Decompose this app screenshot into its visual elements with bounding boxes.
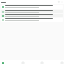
button[interactable]: Profile <box>60 61 63 64</box>
button[interactable]: Library <box>40 61 43 64</box>
button[interactable]: Explore <box>21 61 24 64</box>
button[interactable] <box>1 10 63 13</box>
button[interactable] <box>1 14 63 17</box>
button[interactable] <box>1 18 63 22</box>
button[interactable]: Search <box>58 1 60 3</box>
button[interactable]: Home <box>1 61 4 64</box>
button[interactable] <box>1 5 63 9</box>
button[interactable] <box>1 2 6 3</box>
